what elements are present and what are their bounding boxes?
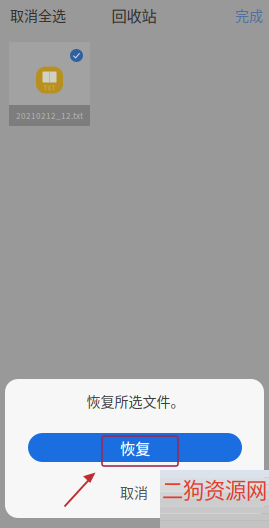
staticText: 回收站	[111, 4, 156, 26]
button[interactable]: 完成	[230, 2, 268, 28]
staticText: 完成	[235, 5, 263, 25]
button[interactable]: TXT	[9, 42, 90, 126]
button[interactable]: 恢复	[28, 433, 242, 462]
staticText: TXT	[43, 83, 55, 92]
staticText: 20210212_12.txt	[16, 110, 83, 121]
staticText: 恢复	[120, 436, 150, 459]
button[interactable]: 取消	[99, 480, 169, 504]
staticText: 恢复所选文件。	[86, 391, 184, 411]
staticText: 取消全选	[10, 5, 66, 25]
staticText: 取消	[120, 482, 148, 502]
button[interactable]: 取消全选	[7, 2, 69, 28]
staticText: 二狗资源网	[162, 474, 267, 504]
